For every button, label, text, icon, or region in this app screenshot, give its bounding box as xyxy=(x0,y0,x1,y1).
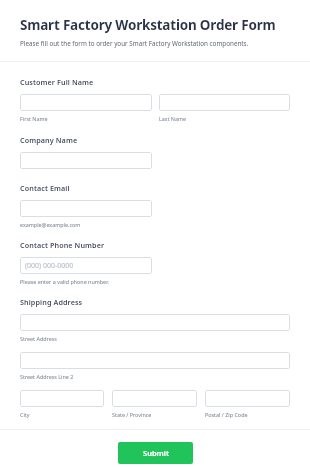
button[interactable] xyxy=(20,352,290,369)
button[interactable] xyxy=(205,390,290,407)
button[interactable] xyxy=(20,94,152,111)
staticText: Street Address xyxy=(20,335,57,342)
button[interactable] xyxy=(112,390,197,407)
staticText: Street Address Line 2 xyxy=(20,373,74,380)
staticText: Please fill out the form to order your S… xyxy=(20,39,249,48)
staticText: Shipping Address xyxy=(20,297,83,307)
button[interactable] xyxy=(20,390,104,407)
staticText: Customer Full Name xyxy=(20,77,94,87)
button[interactable] xyxy=(20,314,290,331)
button[interactable]: Submit xyxy=(118,442,193,464)
staticText: Smart Factory Workstation Order Form xyxy=(20,16,276,34)
button[interactable]: (000) 000-0000 xyxy=(20,257,152,274)
button[interactable] xyxy=(20,200,152,217)
staticText: Company Name xyxy=(20,135,78,145)
staticText: Contact Email xyxy=(20,183,70,193)
staticText: City xyxy=(20,411,30,418)
staticText: First Name xyxy=(20,115,48,122)
button[interactable] xyxy=(20,152,152,169)
staticText: (000) 000-0000 xyxy=(25,261,74,271)
staticText: Last Name xyxy=(159,115,186,122)
staticText: State / Province xyxy=(112,411,152,418)
staticText: Submit xyxy=(143,448,169,458)
staticText: Contact Phone Number xyxy=(20,240,105,250)
staticText: Postal / Zip Code xyxy=(205,411,248,418)
staticText: example@example.com xyxy=(20,221,81,228)
staticText: Please enter a valid phone number. xyxy=(20,278,109,285)
button[interactable] xyxy=(159,94,290,111)
